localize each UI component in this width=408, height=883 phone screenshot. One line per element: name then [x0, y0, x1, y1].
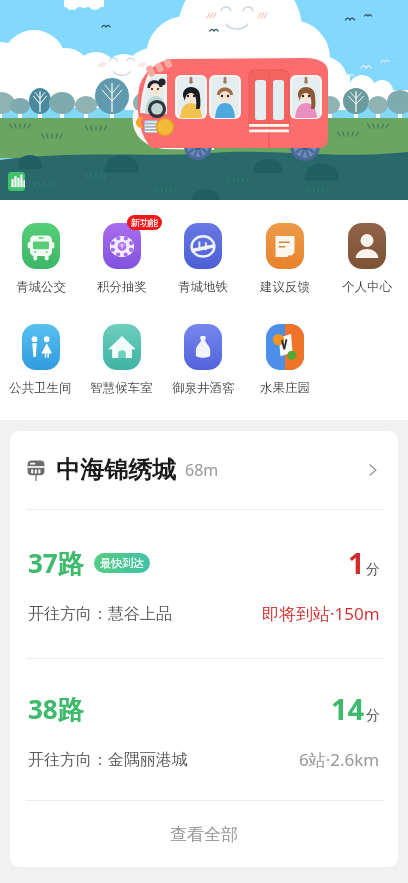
staticText: 查看全部 — [170, 824, 238, 845]
button[interactable]: 建议反馈 — [244, 223, 326, 295]
staticText: 建议反馈 — [260, 279, 310, 295]
button[interactable]: 查看全部 — [10, 801, 398, 867]
staticText: 分 — [366, 707, 380, 725]
staticText: 最快到达 — [100, 556, 144, 570]
button[interactable]: 青城地铁 — [162, 223, 244, 295]
staticText: 开往方向：慧谷上品 — [28, 604, 172, 624]
staticText: 青城公交 — [16, 279, 66, 295]
staticText: 青城地铁 — [178, 279, 228, 295]
button[interactable]: 公共卫生间 — [0, 324, 81, 396]
staticText: 中海锦绣城 — [56, 455, 176, 485]
staticText: 积分抽奖 — [97, 279, 147, 295]
staticText: 御泉井酒窖 — [172, 380, 235, 396]
staticText: 公共卫生间 — [9, 380, 72, 396]
staticText: 1 — [348, 543, 365, 582]
staticText: 即将到站·150m — [262, 602, 380, 625]
staticText: 分 — [366, 561, 380, 579]
staticText: 开往方向：金隅丽港城 — [28, 750, 188, 770]
button[interactable]: 智慧候车室 — [81, 324, 162, 396]
staticText: 6站·2.6km — [299, 748, 380, 771]
staticText: 水果庄园 — [260, 380, 310, 396]
button[interactable]: 37路 — [10, 510, 398, 658]
staticText: 新功能 — [131, 217, 158, 228]
button[interactable]: 御泉井酒窖 — [162, 324, 244, 396]
button[interactable]: City logo — [8, 172, 25, 191]
staticText: 智慧候车室 — [90, 380, 153, 396]
button[interactable]: 38路 — [10, 659, 398, 800]
button[interactable]: 新功能 — [81, 223, 162, 295]
staticText: 37路 — [28, 545, 84, 581]
other: More — [366, 463, 380, 477]
staticText: 14 — [331, 689, 365, 728]
button[interactable]: 水果庄园 — [244, 324, 326, 396]
staticText: 个人中心 — [342, 279, 392, 295]
button[interactable]: 个人中心 — [326, 223, 408, 295]
staticText: 68m — [185, 459, 219, 481]
staticText: 38路 — [28, 691, 84, 727]
button[interactable]: 青城公交 — [0, 223, 81, 295]
button[interactable]: 中海锦绣城 — [10, 431, 398, 509]
